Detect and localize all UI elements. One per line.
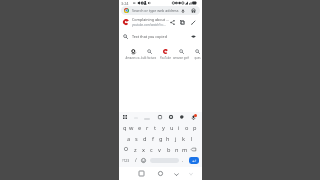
- button[interactable]: v: [156, 145, 163, 154]
- staticText: r: [146, 124, 149, 132]
- button[interactable]: Reveal: [191, 34, 196, 39]
- staticText: o: [185, 124, 189, 132]
- staticText: q: [123, 124, 127, 132]
- staticText: YouTube: [160, 56, 171, 60]
- button[interactable]: f: [149, 134, 156, 143]
- button[interactable]: Amazon.co...: [125, 47, 141, 60]
- button[interactable]: Clipboard: [158, 115, 162, 119]
- staticText: p: [193, 124, 197, 132]
- staticText: Amazon.co...: [125, 56, 141, 60]
- staticText: g: [159, 135, 163, 143]
- staticText: j: [175, 135, 177, 143]
- button[interactable]: Switch keyboard: [189, 172, 193, 176]
- button[interactable]: Space: [150, 158, 179, 163]
- button[interactable]: Copy: [180, 20, 185, 25]
- staticText: k: [182, 135, 185, 143]
- staticText: a: [127, 135, 131, 143]
- staticText: d: [143, 135, 147, 143]
- staticText: Complaining about ...: [132, 17, 170, 22]
- button[interactable]: w: [128, 123, 135, 132]
- button[interactable]: Home: [158, 171, 163, 176]
- button[interactable]: d: [141, 134, 148, 143]
- staticText: f: [152, 135, 154, 143]
- button[interactable]: Text that you copied: [119, 31, 202, 41]
- button[interactable]: Shift: [124, 147, 128, 151]
- staticText: y: [162, 124, 165, 132]
- staticText: ques: [194, 56, 201, 60]
- button[interactable]: Toolbar: [123, 115, 127, 119]
- button[interactable]: Enter: [189, 157, 199, 164]
- button[interactable]: Emoji: [141, 158, 146, 163]
- other: Incognito: [191, 8, 196, 13]
- button[interactable]: n: [173, 145, 180, 154]
- button[interactable]: b: [165, 145, 172, 154]
- button[interactable]: j: [172, 134, 179, 143]
- button[interactable]: q: [121, 123, 128, 132]
- button[interactable]: /: [133, 156, 139, 164]
- button[interactable]: ques: [189, 47, 205, 60]
- button[interactable]: c: [148, 145, 155, 154]
- staticText: m: [182, 146, 188, 154]
- button[interactable]: m: [181, 145, 188, 154]
- button[interactable]: r: [144, 123, 151, 132]
- staticText: b: [167, 146, 171, 154]
- button[interactable]: Voice input: [191, 115, 196, 120]
- button[interactable]: i: [175, 123, 182, 132]
- button[interactable]: e: [136, 123, 143, 132]
- button[interactable]: k: [180, 134, 187, 143]
- staticText: bulk factura ...: [141, 56, 157, 60]
- button[interactable]: s: [133, 134, 140, 143]
- staticText: v: [158, 146, 161, 154]
- staticText: z: [134, 146, 137, 154]
- button[interactable]: l: [188, 134, 195, 143]
- staticText: w: [129, 124, 134, 132]
- staticText: i: [178, 124, 180, 132]
- button[interactable]: Share: [170, 20, 175, 25]
- button[interactable]: Edit: [191, 20, 196, 25]
- button[interactable]: Stickers: [180, 115, 184, 119]
- button[interactable]: Search or type web address: [121, 6, 200, 15]
- button[interactable]: Complaining about ...: [119, 17, 202, 27]
- staticText: /: [135, 157, 137, 163]
- button[interactable]: YouTube: [157, 47, 173, 60]
- staticText: n: [175, 146, 179, 154]
- staticText: c: [150, 146, 153, 154]
- button[interactable]: Settings: [169, 115, 173, 119]
- staticText: .: [182, 157, 184, 163]
- button[interactable]: y: [160, 123, 167, 132]
- button[interactable]: amazon goth...: [173, 47, 189, 60]
- button[interactable]: Backspace: [191, 147, 196, 152]
- staticText: l: [191, 135, 193, 143]
- button[interactable]: bulk factura ...: [141, 47, 157, 60]
- staticText: Text that you copied: [132, 34, 191, 39]
- button[interactable]: z: [132, 145, 139, 154]
- button[interactable]: g: [157, 134, 164, 143]
- staticText: Search or type web address: [132, 8, 181, 13]
- staticText: 3:24: [121, 1, 129, 6]
- button[interactable]: x: [140, 145, 147, 154]
- button[interactable]: a: [125, 134, 132, 143]
- button[interactable]: p: [191, 123, 198, 132]
- other: Voice search: [181, 9, 185, 13]
- button[interactable]: o: [183, 123, 190, 132]
- staticText: amazon goth...: [173, 56, 189, 60]
- staticText: ?123: [122, 158, 130, 162]
- staticText: youtube.com/watch?v=...: [132, 23, 166, 27]
- button[interactable]: Recents: [139, 171, 144, 176]
- button[interactable]: u: [168, 123, 175, 132]
- button[interactable]: t: [152, 123, 159, 132]
- staticText: e: [138, 124, 142, 132]
- button[interactable]: Back: [174, 172, 179, 177]
- button[interactable]: ?123: [122, 156, 130, 164]
- staticText: h: [166, 135, 170, 143]
- button[interactable]: .: [181, 156, 185, 164]
- staticText: u: [170, 124, 174, 132]
- staticText: x: [142, 146, 145, 154]
- button[interactable]: h: [164, 134, 171, 143]
- staticText: t: [154, 124, 157, 132]
- staticText: s: [135, 135, 138, 143]
